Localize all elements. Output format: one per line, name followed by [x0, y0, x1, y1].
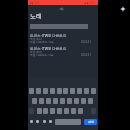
- button[interactable]: Key: [43, 108, 48, 114]
- button[interactable]: Key: [50, 88, 55, 94]
- button[interactable]: Key: [78, 108, 83, 114]
- button[interactable]: Voice input: [42, 118, 46, 124]
- button[interactable]: Key: [50, 108, 55, 114]
- button[interactable]: Key: [63, 88, 68, 94]
- button[interactable]: Key: [71, 108, 76, 114]
- button[interactable]: Space: [55, 119, 81, 125]
- button[interactable]: 트위스 (TWS) 다운로드: [28, 44, 98, 57]
- staticText: 트위스 (TWS) 다운로드: [30, 46, 67, 51]
- button[interactable]: Key: [57, 88, 62, 94]
- staticText: 무료 음악: [30, 37, 42, 41]
- button[interactable]: 트위스 (TWS) 다운로드: [28, 31, 98, 44]
- staticText: 무료 다운로드 가능: [30, 40, 54, 44]
- staticText: 2024.5.1: [81, 40, 92, 44]
- button[interactable]: Key: [57, 108, 62, 114]
- button[interactable]: Key: [74, 98, 79, 104]
- button[interactable]: Back: [58, 5, 65, 12]
- staticText: 트위스 (TWS) 다운로드: [30, 33, 67, 38]
- staticText: ▲ ▮ 98%: [84, 1, 96, 5]
- button[interactable]: Key: [88, 98, 93, 104]
- button[interactable]: Key: [60, 98, 65, 104]
- button[interactable]: Key: [46, 98, 51, 104]
- button[interactable]: Key: [91, 88, 96, 94]
- button[interactable]: Key: [53, 98, 58, 104]
- button[interactable]: Key: [84, 88, 89, 94]
- button[interactable]: Key: [29, 88, 34, 94]
- staticText: ▮▮ 4:05: [30, 1, 41, 5]
- button[interactable]: Key: [36, 88, 41, 94]
- button[interactable]: Symbols: [29, 118, 33, 124]
- button[interactable]: Key: [64, 108, 69, 114]
- button[interactable]: Key: [67, 98, 72, 104]
- button[interactable]: Emoji: [35, 118, 39, 124]
- button[interactable]: Key: [32, 98, 37, 104]
- button[interactable]: Key: [39, 98, 44, 104]
- staticText: 2024.5.1: [81, 53, 92, 57]
- button[interactable]: Key: [37, 108, 42, 114]
- button[interactable]: Key: [70, 88, 75, 94]
- button[interactable]: Key: [43, 88, 48, 94]
- staticText: 무료 다운로드 가능: [30, 53, 54, 57]
- button[interactable]: Assistant: [119, 5, 127, 13]
- staticText: 노래: [30, 12, 42, 20]
- staticText: 검색: [88, 120, 94, 124]
- button[interactable]: 검색: [84, 119, 97, 125]
- staticText: 무료 음악: [30, 50, 42, 54]
- button[interactable]: Comma: [48, 118, 52, 124]
- button[interactable]: Key: [77, 88, 82, 94]
- button[interactable]: Key: [81, 98, 86, 104]
